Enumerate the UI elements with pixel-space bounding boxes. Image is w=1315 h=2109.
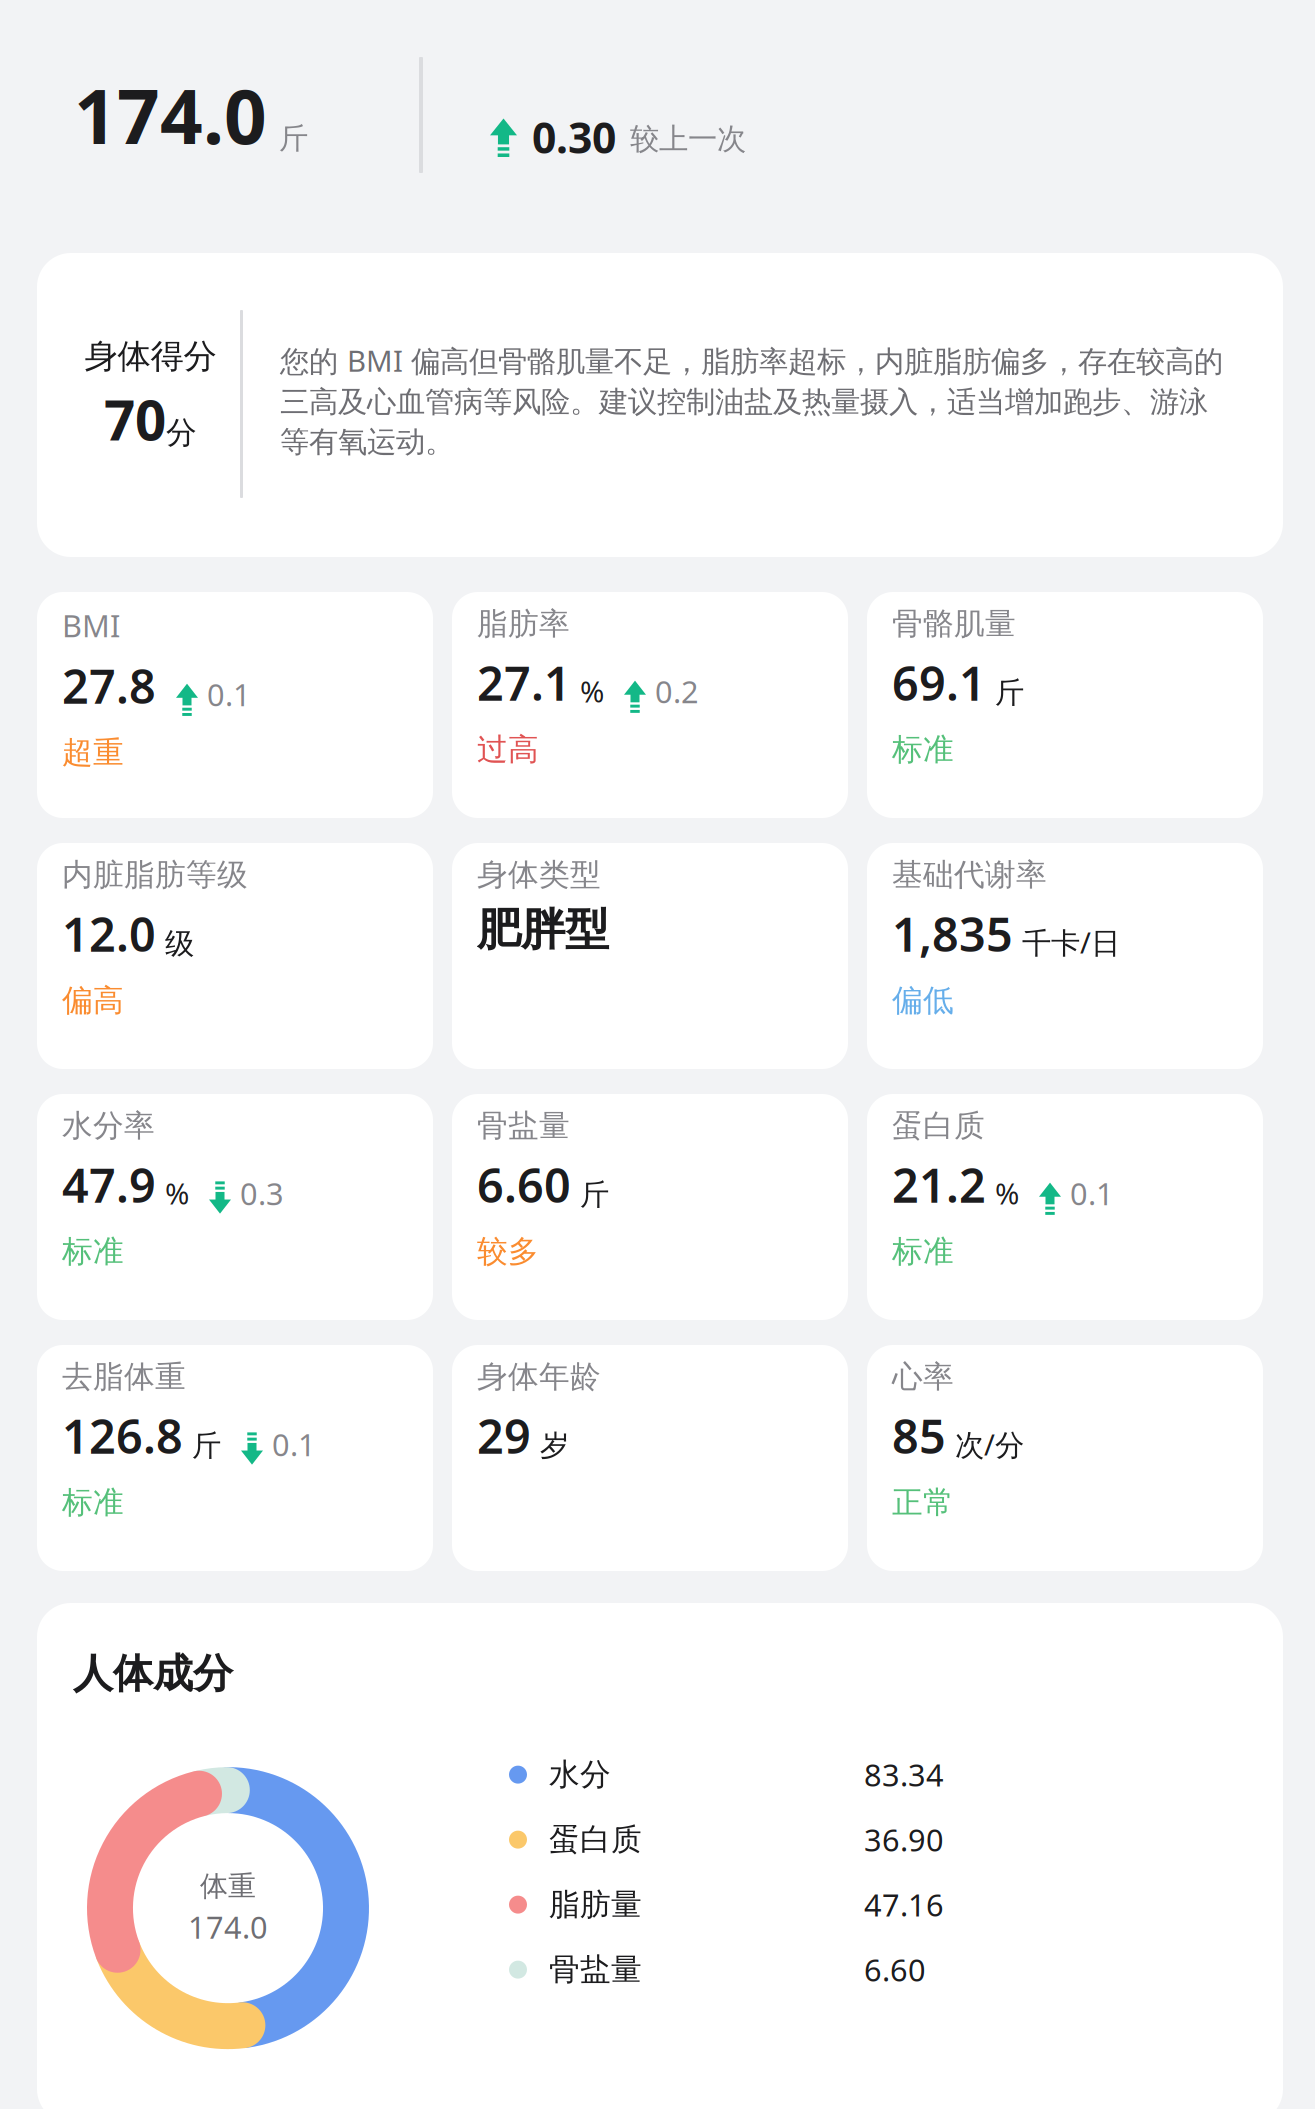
staticText: 体重 xyxy=(200,1869,256,1903)
staticText: 水分率 xyxy=(62,1107,155,1145)
staticText: % xyxy=(165,1174,189,1213)
staticText: 水分 xyxy=(549,1756,611,1793)
staticText: 过高 xyxy=(477,731,539,768)
staticText: 正常 xyxy=(892,1484,954,1521)
staticText: 47.9 xyxy=(62,1154,156,1216)
staticText: 0.1 xyxy=(207,674,251,715)
button[interactable]: 蛋白质 xyxy=(867,1094,1263,1320)
staticText: 内脏脂肪等级 xyxy=(62,856,248,894)
staticText: % xyxy=(995,1174,1019,1213)
button[interactable]: 基础代谢率 xyxy=(867,843,1263,1069)
staticText: 69.1 xyxy=(892,652,986,714)
staticText: 偏高 xyxy=(62,982,124,1019)
staticText: 级 xyxy=(165,926,194,962)
staticText: 蛋白质 xyxy=(549,1821,642,1858)
staticText: 斤 xyxy=(995,675,1024,711)
staticText: 骨盐量 xyxy=(549,1951,642,1988)
staticText: % xyxy=(580,672,604,711)
button[interactable]: 身体年龄 xyxy=(452,1345,848,1571)
staticText: 骨盐量 xyxy=(477,1107,570,1145)
staticText: 36.90 xyxy=(864,1819,944,1860)
button[interactable]: 骨骼肌量 xyxy=(867,592,1263,818)
staticText: 6.60 xyxy=(477,1154,571,1216)
staticText: 肥胖型 xyxy=(477,903,609,957)
button[interactable]: 脂肪率 xyxy=(452,592,848,818)
button[interactable]: 心率 xyxy=(867,1345,1263,1571)
staticText: 身体年龄 xyxy=(477,1358,601,1396)
staticText: 27.8 xyxy=(62,655,156,717)
staticText: 0.1 xyxy=(272,1424,316,1465)
staticText: 偏低 xyxy=(892,982,954,1019)
button[interactable]: 骨盐量 xyxy=(452,1094,848,1320)
staticText: 骨骼肌量 xyxy=(892,605,1016,643)
staticText: 标准 xyxy=(892,1233,954,1270)
staticText: 标准 xyxy=(62,1233,124,1270)
staticText: 岁 xyxy=(540,1428,569,1464)
staticText: 29 xyxy=(477,1405,531,1467)
staticText: 千卡/日 xyxy=(1022,923,1120,962)
staticText: 0.1 xyxy=(1070,1173,1114,1214)
staticText: 分 xyxy=(166,414,197,452)
staticText: 70 xyxy=(104,383,166,455)
staticText: 心率 xyxy=(892,1358,954,1396)
staticText: 126.8 xyxy=(62,1405,183,1467)
button[interactable]: 内脏脂肪等级 xyxy=(37,843,433,1069)
staticText: BMI xyxy=(62,605,120,646)
staticText: 较多 xyxy=(477,1233,539,1270)
staticText: 47.16 xyxy=(864,1884,944,1925)
staticText: 较上一次 xyxy=(630,121,746,157)
staticText: 27.1 xyxy=(477,652,571,714)
staticText: 斤 xyxy=(580,1177,609,1213)
staticText: 174.0 xyxy=(188,1906,268,1947)
staticText: 斤 xyxy=(279,120,308,156)
button[interactable]: 水分率 xyxy=(37,1094,433,1320)
staticText: 21.2 xyxy=(892,1154,986,1216)
staticText: 超重 xyxy=(62,734,124,771)
staticText: 去脂体重 xyxy=(62,1358,186,1396)
staticText: 6.60 xyxy=(864,1949,926,1990)
button[interactable]: 身体类型 xyxy=(452,843,848,1069)
staticText: 次/分 xyxy=(955,1425,1024,1464)
staticText: 0.3 xyxy=(240,1173,284,1214)
staticText: 174.0 xyxy=(74,65,267,165)
staticText: 12.0 xyxy=(62,903,156,965)
staticText: 0.2 xyxy=(655,671,699,712)
staticText: 0.30 xyxy=(532,109,616,165)
staticText: 斤 xyxy=(192,1428,221,1464)
staticText: 标准 xyxy=(62,1484,124,1521)
button[interactable]: 去脂体重 xyxy=(37,1345,433,1571)
button[interactable]: BMI xyxy=(37,592,433,818)
staticText: 85 xyxy=(892,1405,946,1467)
staticText: 人体成分 xyxy=(73,1649,233,1698)
staticText: 身体类型 xyxy=(477,856,601,894)
staticText: 身体得分 xyxy=(84,336,216,377)
staticText: 脂肪量 xyxy=(549,1886,642,1923)
staticText: 1,835 xyxy=(892,903,1013,965)
staticText: 标准 xyxy=(892,731,954,768)
staticText: 蛋白质 xyxy=(892,1107,985,1145)
staticText: 基础代谢率 xyxy=(892,856,1047,894)
staticText: 83.34 xyxy=(864,1754,944,1795)
staticText: 脂肪率 xyxy=(477,605,570,643)
staticText: 您的 BMI 偏高但骨骼肌量不足，脂肪率超标，内脏脂肪偏多，存在较高的三高及心血… xyxy=(280,341,1223,460)
